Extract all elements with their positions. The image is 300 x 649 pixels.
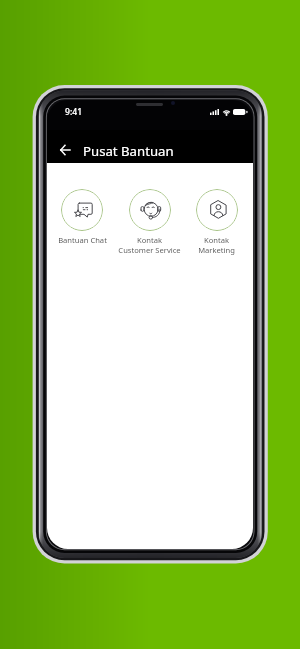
staticText: Bantuan Chat — [58, 235, 107, 245]
button[interactable]: Bantuan Chat — [48, 189, 116, 245]
staticText: Kontak Customer Service — [118, 235, 181, 255]
staticText: Kontak Marketing — [198, 235, 235, 255]
staticText: Pusat Bantuan — [83, 142, 174, 160]
button[interactable]: Back — [53, 138, 76, 161]
button[interactable]: Kontak Customer Service — [116, 189, 183, 255]
button[interactable]: Kontak Marketing — [183, 189, 250, 255]
staticText: 9:41 — [65, 106, 83, 118]
